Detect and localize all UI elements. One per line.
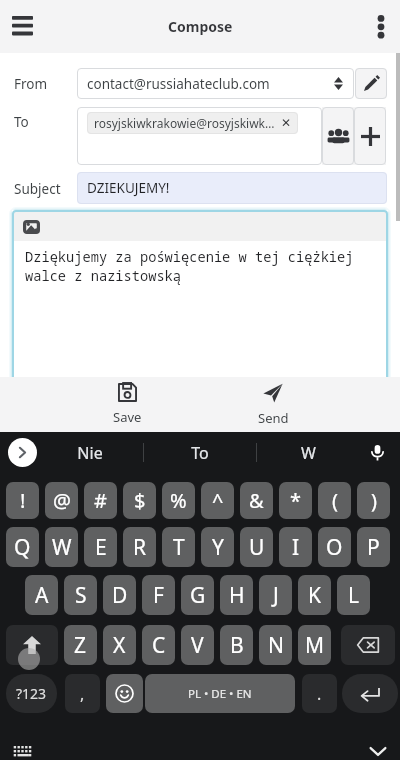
staticText: $ <box>134 487 146 514</box>
button[interactable]: # <box>84 482 117 519</box>
button[interactable]: R <box>123 527 156 567</box>
button[interactable]: X <box>103 625 136 665</box>
staticText: P <box>367 533 380 562</box>
button[interactable]: O <box>318 527 351 567</box>
staticText: Subject <box>14 180 61 198</box>
button[interactable]: H <box>220 575 253 615</box>
button[interactable]: contact@russiahateclub.com <box>77 68 354 99</box>
staticText: Q <box>14 533 31 562</box>
button[interactable]: Edit sender <box>355 68 387 99</box>
button[interactable]: Send <box>219 377 327 432</box>
staticText: Nie <box>77 442 103 464</box>
button[interactable]: K <box>298 575 331 615</box>
button[interactable]: Emoji <box>106 674 143 713</box>
button[interactable]: N <box>259 625 292 665</box>
button[interactable]: ! <box>6 482 39 519</box>
button[interactable]: Period <box>302 674 337 713</box>
button[interactable]: PL • DE • EN <box>145 674 295 713</box>
staticText: U <box>249 533 265 562</box>
button[interactable]: C <box>142 625 175 665</box>
staticText: K <box>308 581 321 610</box>
staticText: S <box>75 581 87 610</box>
button[interactable]: Keyboard settings <box>7 736 37 760</box>
button[interactable]: ( <box>318 482 351 519</box>
staticText: ) <box>371 487 377 514</box>
button[interactable]: Y <box>201 527 234 567</box>
staticText: contact@russiahateclub.com <box>87 75 270 93</box>
button[interactable]: Insert image <box>19 216 43 238</box>
button[interactable]: Hide keyboard <box>363 736 393 760</box>
staticText: Dziękujemy za poświęcenie w tej ciężkiej… <box>25 247 354 285</box>
staticText: F <box>153 581 164 610</box>
staticText: ?123 <box>16 684 47 703</box>
staticText: To <box>14 113 29 131</box>
staticText: @ <box>53 487 71 514</box>
button[interactable]: * <box>279 482 312 519</box>
button[interactable]: F <box>142 575 175 615</box>
button[interactable]: W <box>256 432 361 473</box>
button[interactable]: Expand suggestions <box>8 438 37 467</box>
staticText: B <box>230 631 244 660</box>
button[interactable]: V <box>181 625 214 665</box>
staticText: N <box>268 631 284 660</box>
staticText: # <box>94 487 107 514</box>
button[interactable]: & <box>240 482 273 519</box>
button[interactable]: L <box>337 575 370 615</box>
button[interactable]: Q <box>6 527 39 567</box>
button[interactable]: S <box>64 575 97 615</box>
staticText: ! <box>20 487 26 514</box>
staticText: * <box>290 487 302 514</box>
staticText: M <box>305 631 325 660</box>
staticText: R <box>133 533 147 562</box>
button[interactable]: M <box>298 625 331 665</box>
button[interactable]: J <box>259 575 292 615</box>
button[interactable]: Nie <box>37 432 143 473</box>
staticText: Save <box>113 408 142 426</box>
staticText: Y <box>212 533 224 562</box>
button[interactable]: W <box>45 527 78 567</box>
button[interactable]: ^ <box>201 482 234 519</box>
button[interactable]: Insert image <box>12 210 388 390</box>
button[interactable]: G <box>181 575 214 615</box>
staticText: Compose <box>168 17 233 36</box>
staticText: I <box>292 533 300 562</box>
button[interactable]: Voice input <box>362 437 392 467</box>
staticText: ( <box>332 487 338 514</box>
button[interactable]: To <box>143 432 257 473</box>
button[interactable]: $ <box>123 482 156 519</box>
button[interactable]: Backspace <box>341 625 395 665</box>
button[interactable]: Save <box>73 377 181 432</box>
button[interactable]: Comma <box>65 674 100 713</box>
staticText: . <box>317 683 322 705</box>
button[interactable]: U <box>240 527 273 567</box>
button[interactable]: I <box>279 527 312 567</box>
staticText: % <box>170 487 187 514</box>
button[interactable]: T <box>162 527 195 567</box>
button[interactable]: rosyjskiwkrakowie@rosyjskiwk… <box>77 107 322 165</box>
staticText: W <box>52 533 72 562</box>
button[interactable]: ) <box>357 482 390 519</box>
staticText: DZIEKUJEMY! <box>87 179 170 197</box>
button[interactable]: @ <box>45 482 78 519</box>
button[interactable]: More options <box>359 0 400 53</box>
staticText: T <box>173 533 185 562</box>
button[interactable]: ?123 <box>6 674 57 713</box>
button[interactable]: Shift <box>6 625 58 665</box>
button[interactable]: Z <box>64 625 97 665</box>
staticText: , <box>80 683 85 705</box>
staticText: O <box>326 533 343 562</box>
button[interactable]: Enter <box>342 674 398 713</box>
button[interactable]: A <box>25 575 58 615</box>
staticText: E <box>95 533 107 562</box>
button[interactable]: E <box>84 527 117 567</box>
button[interactable]: % <box>162 482 195 519</box>
button[interactable]: DZIEKUJEMY! <box>77 172 387 204</box>
button[interactable]: Menu <box>0 0 44 51</box>
button[interactable]: B <box>220 625 253 665</box>
staticText: rosyjskiwkrakowie@rosyjskiwk… <box>94 115 275 131</box>
button[interactable]: Add recipient <box>354 107 386 165</box>
button[interactable]: D <box>103 575 136 615</box>
button[interactable]: P <box>357 527 390 567</box>
staticText: G <box>190 581 206 610</box>
button[interactable]: Contacts <box>322 107 354 165</box>
